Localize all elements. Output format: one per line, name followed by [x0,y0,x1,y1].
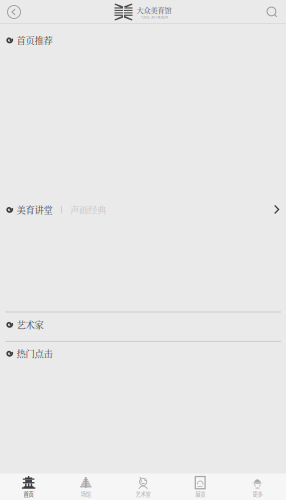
button[interactable]: 展览 [172,473,229,500]
button[interactable]: Search [258,0,286,24]
staticText: 艺术室 [135,490,150,498]
staticText: 热门点击 [17,347,53,360]
button[interactable]: 热门点击 [0,345,286,361]
button[interactable]: 美育讲堂 [0,201,286,217]
staticText: 更多 [252,490,262,498]
button[interactable]: 场馆 [57,473,114,500]
staticText: PUBLIC ART MUSEUM [140,16,167,19]
staticText: 展览 [195,490,205,498]
button[interactable]: Back [0,0,28,24]
button[interactable]: 更多 [229,473,286,500]
staticText: 美育讲堂 [17,203,53,216]
staticText: 首页推荐 [17,33,53,47]
button[interactable]: 艺术家 [0,316,286,332]
button[interactable]: 首页推荐 [0,32,286,48]
staticText: 首页 [24,490,34,498]
button[interactable]: 艺术室 [114,473,172,500]
staticText: 艺术家 [17,318,44,331]
staticText: 场馆 [81,490,91,498]
staticText: 声画经典 [70,203,106,216]
button[interactable]: 首页 [0,473,57,500]
staticText: 大众美育馆 [136,5,171,15]
